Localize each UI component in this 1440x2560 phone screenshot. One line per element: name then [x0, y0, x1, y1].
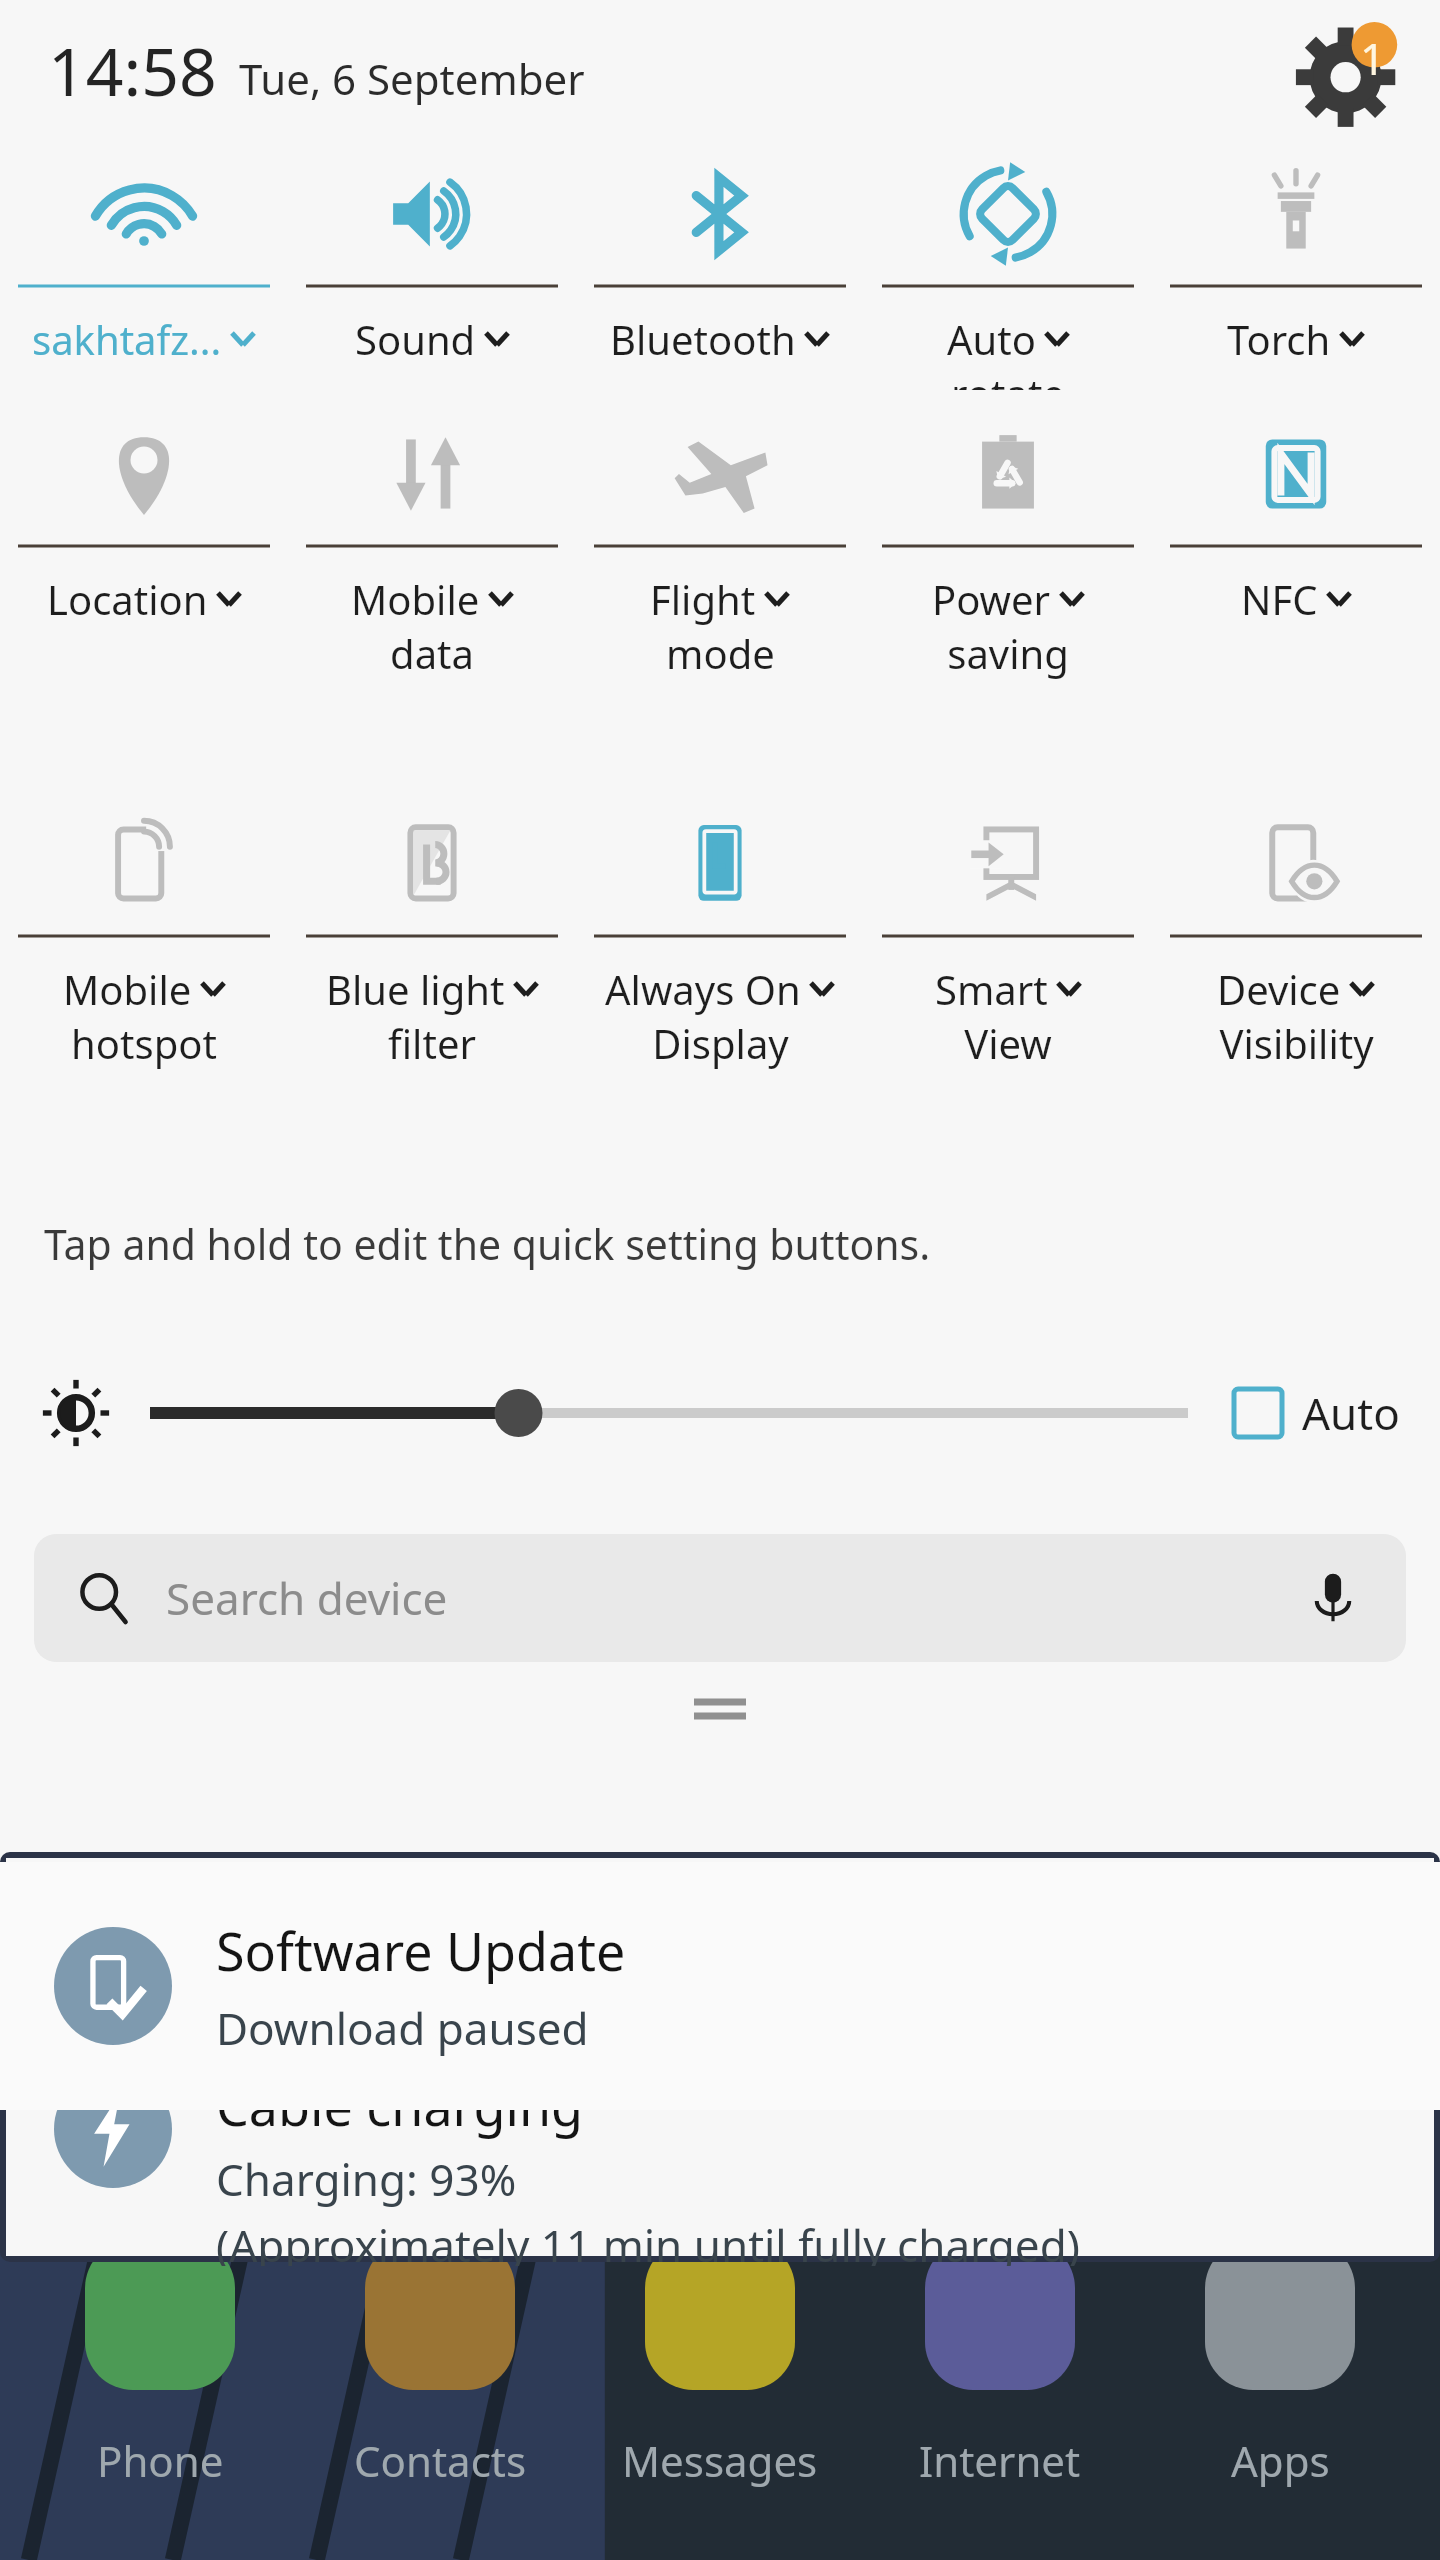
staticText: Download paused — [216, 1998, 589, 2058]
button[interactable]: sakhtafz... — [0, 140, 288, 390]
button[interactable]: Phone — [20, 2240, 300, 2489]
staticText: 1 — [1360, 28, 1386, 88]
staticText: Auto — [1302, 1383, 1400, 1443]
staticText: (Approximately 11 min until fully charge… — [216, 2215, 1080, 2266]
staticText: Tap and hold to edit the quick setting b… — [44, 1216, 931, 1272]
button[interactable]: Settings — [1288, 10, 1408, 130]
staticText: Cable charging — [216, 2070, 584, 2141]
staticText: Phone — [97, 2432, 224, 2489]
staticText: Smart — [935, 962, 1048, 1016]
staticText: Charging: 93% — [216, 2149, 517, 2209]
staticText: Apps — [1231, 2432, 1330, 2489]
staticText: Mobile — [63, 962, 192, 1016]
staticText: Torch — [1227, 312, 1331, 366]
button[interactable]: Mobile — [0, 780, 288, 1170]
button[interactable]: Smart — [864, 780, 1152, 1170]
staticText: 14:58 — [48, 25, 217, 115]
button[interactable]: Mobile — [288, 390, 576, 780]
staticText: Contacts — [354, 2432, 527, 2489]
staticText: Search device — [166, 1568, 1304, 1628]
button[interactable]: Apps — [1140, 2240, 1420, 2489]
staticText: Device — [1217, 962, 1341, 1016]
button[interactable]: Bluetooth — [576, 140, 864, 390]
staticText: filter — [388, 1016, 476, 1070]
staticText: sakhtafz... — [32, 312, 222, 366]
button[interactable]: Location — [0, 390, 288, 780]
staticText: Internet — [919, 2432, 1081, 2489]
staticText: Always On — [605, 962, 801, 1016]
button[interactable]: Auto — [1232, 1383, 1400, 1443]
staticText: rotate — [951, 366, 1065, 390]
button[interactable]: Software Update — [0, 1862, 1440, 2110]
button[interactable]: Sound — [288, 140, 576, 390]
button[interactable]: Power — [864, 390, 1152, 780]
staticText: saving — [947, 626, 1069, 680]
other: Voice search — [1304, 1569, 1362, 1627]
staticText: Flight — [650, 572, 756, 626]
staticText: Messages — [622, 2432, 818, 2489]
button[interactable]: Messages — [580, 2240, 860, 2489]
button[interactable]: Always On — [576, 780, 864, 1170]
staticText: hotspot — [71, 1016, 217, 1070]
button[interactable]: Flight — [576, 390, 864, 780]
staticText: Mobile — [351, 572, 480, 626]
staticText: Location — [47, 572, 208, 626]
button[interactable]: Blue light — [288, 780, 576, 1170]
button[interactable]: Auto — [864, 140, 1152, 390]
button[interactable]: Cable charging — [0, 2070, 1440, 2266]
button[interactable]: Search device — [34, 1534, 1406, 1662]
staticText: View — [964, 1016, 1052, 1070]
staticText: Tue, 6 September — [239, 50, 585, 107]
staticText: mode — [666, 626, 775, 680]
staticText: Auto — [947, 312, 1036, 366]
staticText: Display — [652, 1016, 789, 1070]
staticText: Power — [932, 572, 1051, 626]
button[interactable]: Internet — [860, 2240, 1140, 2489]
staticText: Software Update — [216, 1915, 626, 1986]
button[interactable]: Device — [1152, 780, 1440, 1170]
staticText: NFC — [1241, 572, 1318, 626]
staticText: Sound — [355, 312, 476, 366]
staticText: Bluetooth — [610, 312, 796, 366]
button[interactable]: Brightness — [150, 1373, 1188, 1453]
button[interactable]: Contacts — [300, 2240, 580, 2489]
staticText: data — [390, 626, 474, 680]
staticText: Blue light — [326, 962, 505, 1016]
staticText: Visibility — [1219, 1016, 1374, 1070]
button[interactable]: Torch — [1152, 140, 1440, 390]
button[interactable]: NFC — [1152, 390, 1440, 780]
